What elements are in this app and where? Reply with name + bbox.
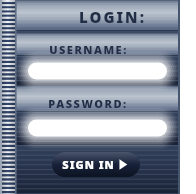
staticText: USERNAME: bbox=[49, 42, 128, 57]
staticText: SIGN IN bbox=[62, 157, 115, 172]
staticText: PASSWORD: bbox=[48, 96, 128, 111]
button[interactable]: Username input field bbox=[28, 62, 167, 80]
button[interactable]: SIGN IN bbox=[52, 152, 140, 177]
button[interactable]: Password input field bbox=[28, 119, 167, 137]
staticText: LOGIN: bbox=[79, 7, 146, 27]
